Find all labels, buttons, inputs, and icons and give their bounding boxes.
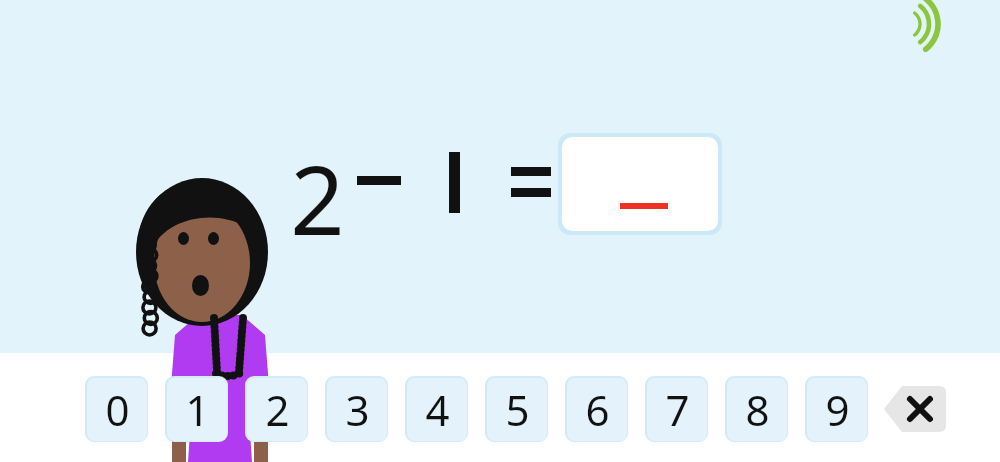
staticText: 9: [825, 381, 850, 438]
button[interactable]: 4: [405, 376, 468, 442]
staticText: 3: [345, 381, 370, 438]
staticText: 4: [425, 381, 450, 438]
staticText: 1: [185, 381, 210, 438]
button[interactable]: 7: [645, 376, 708, 442]
button[interactable]: 6: [565, 376, 628, 442]
staticText: 2: [265, 381, 290, 438]
button[interactable]: 3: [325, 376, 388, 442]
staticText: 6: [585, 381, 610, 438]
button[interactable]: 5: [485, 376, 548, 442]
staticText: 5: [505, 381, 530, 438]
staticText: 7: [665, 381, 690, 438]
button[interactable]: 8: [725, 376, 788, 442]
staticText: 2: [290, 133, 345, 241]
button[interactable]: 2: [245, 376, 308, 442]
button[interactable]: Backspace: [884, 386, 946, 432]
button[interactable]: 1: [165, 376, 228, 442]
button[interactable]: 9: [805, 376, 868, 442]
button[interactable]: Answer field: [558, 133, 722, 235]
button[interactable]: Play audio: [898, 2, 950, 46]
staticText: 8: [745, 381, 770, 438]
staticText: 0: [105, 381, 130, 438]
button[interactable]: 0: [85, 376, 148, 442]
